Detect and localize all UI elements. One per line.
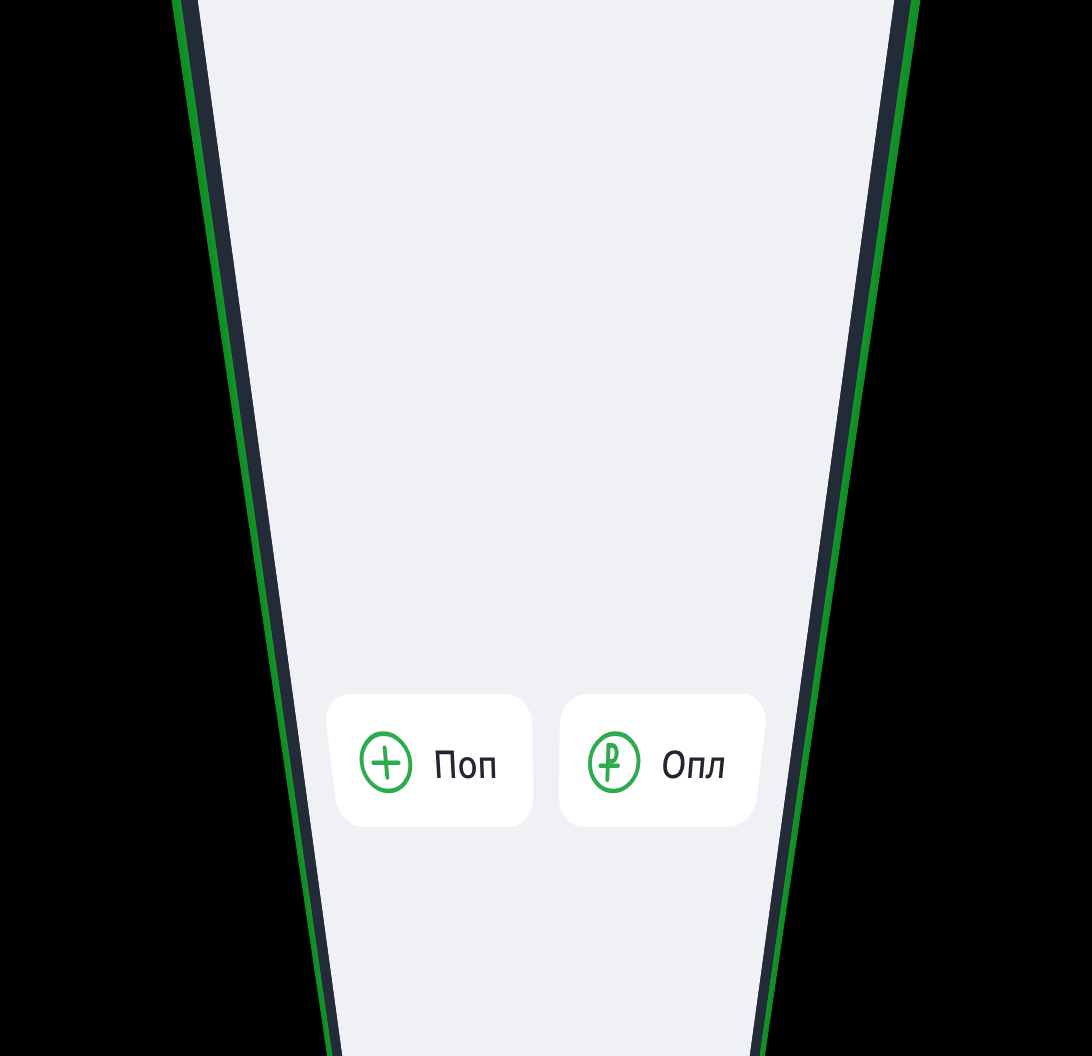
staticText: Оплатить — [660, 736, 740, 789]
button[interactable]: Пополнить — [323, 694, 533, 827]
button[interactable]: Оплатить — [559, 694, 769, 827]
staticText: Пополнить — [431, 736, 510, 789]
